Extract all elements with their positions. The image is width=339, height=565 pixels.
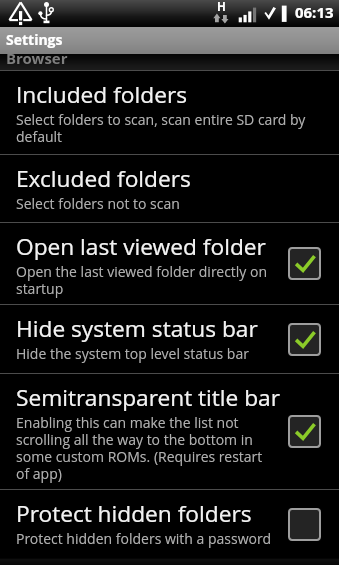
staticText: Open last viewed folder: [16, 231, 296, 262]
button[interactable]: Open last viewed folder: [0, 223, 339, 304]
staticText: Select folders to scan, scan entire SD c…: [16, 110, 322, 146]
staticText: Hide the system top level status bar: [16, 344, 278, 363]
button[interactable]: Semitransparent title bar: [0, 374, 339, 489]
button[interactable]: Unchecked: [288, 508, 321, 541]
staticText: 06:13: [295, 2, 334, 22]
staticText: Settings: [6, 30, 63, 49]
staticText: Included folders: [16, 79, 296, 110]
button[interactable]: Checked: [288, 247, 321, 280]
staticText: Enabling this can make the list not scro…: [16, 413, 278, 483]
staticText: Semitransparent title bar: [16, 382, 296, 413]
staticText: Protect hidden folders: [16, 498, 296, 529]
staticText: Hide system status bar: [16, 313, 296, 344]
staticText: Protect hidden folders with a password: [16, 529, 278, 548]
staticText: Open the last viewed folder directly on …: [16, 262, 278, 298]
button[interactable]: Protect hidden folders: [0, 490, 339, 558]
staticText: Select folders not to scan: [16, 194, 322, 213]
staticText: H: [217, 0, 226, 15]
button[interactable]: Hide system status bar: [0, 305, 339, 373]
staticText: Browser: [6, 54, 68, 64]
button[interactable]: Checked: [288, 415, 321, 448]
staticText: Excluded folders: [16, 163, 296, 194]
button[interactable]: Checked: [288, 323, 321, 356]
button[interactable]: Included folders: [0, 71, 339, 154]
button[interactable]: Excluded folders: [0, 155, 339, 222]
